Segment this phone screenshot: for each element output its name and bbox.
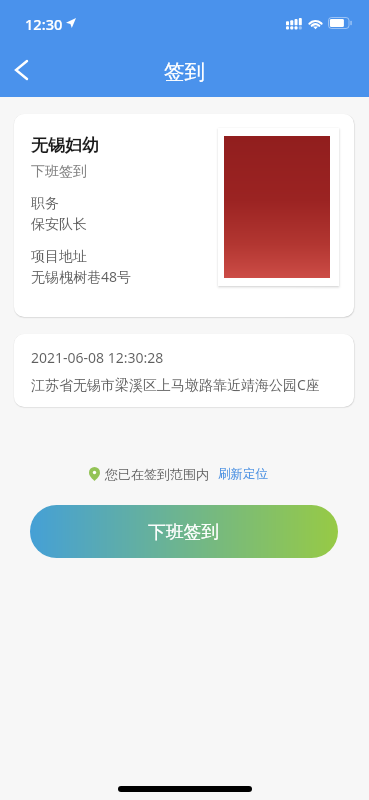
staticText: 下班签到 (148, 521, 220, 543)
button[interactable]: Back (0, 49, 42, 91)
staticText: 12:30 (25, 14, 63, 34)
button[interactable]: 2021-06-08 12:30:28 (14, 334, 354, 407)
staticText: 项目地址 (31, 248, 87, 266)
staticText: 职务 (31, 195, 59, 213)
staticText: 您已在签到范围内 (105, 466, 209, 482)
staticText: 江苏省无锡市梁溪区上马墩路靠近靖海公园C座 (31, 375, 320, 394)
staticText: 刷新定位 (218, 466, 268, 482)
button[interactable]: 下班签到 (30, 505, 338, 558)
staticText: 无锡妇幼 (31, 135, 99, 156)
staticText: 下班签到 (31, 163, 87, 181)
button[interactable]: 无锡妇幼 (14, 114, 354, 317)
staticText: 无锡槐树巷48号 (31, 267, 132, 286)
staticText: 2021-06-08 12:30:28 (31, 348, 164, 367)
staticText: 签到 (164, 59, 205, 85)
staticText: 保安队长 (31, 216, 87, 234)
button[interactable]: 刷新定位 (218, 466, 268, 482)
